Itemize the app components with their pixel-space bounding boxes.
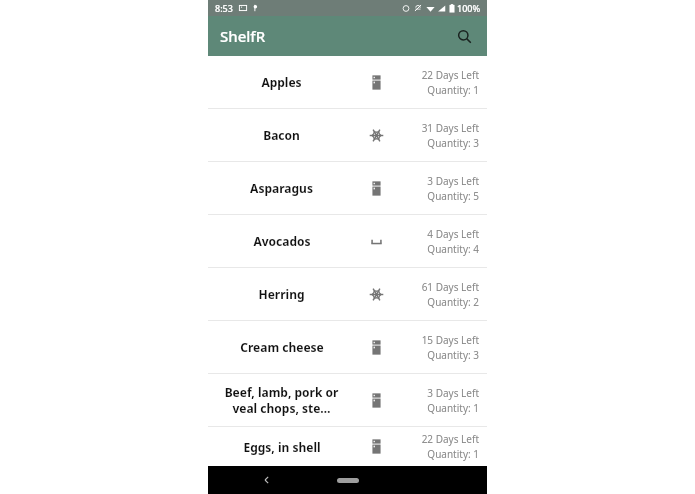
staticText: Quantity: 2 xyxy=(427,295,479,309)
staticText: Cream cheese xyxy=(240,339,324,355)
button[interactable]: Bacon xyxy=(208,109,487,161)
button[interactable]: Home xyxy=(331,472,365,488)
button[interactable]: Beef, lamb, pork or veal chops, ste… xyxy=(208,374,487,426)
staticText: 22 Days Left xyxy=(421,432,479,446)
button[interactable]: Apples xyxy=(208,56,487,108)
staticText: Quantity: 3 xyxy=(427,136,479,150)
staticText: 100% xyxy=(457,2,481,14)
staticText: Quantity: 1 xyxy=(427,447,479,461)
staticText: Bacon xyxy=(263,127,300,143)
staticText: 4 Days Left xyxy=(427,227,479,241)
staticText: Beef, lamb, pork or veal chops, ste… xyxy=(214,384,349,416)
button[interactable]: Herring xyxy=(208,268,487,320)
staticText: Asparagus xyxy=(250,180,313,196)
staticText: Avocados xyxy=(253,233,311,249)
staticText: Quantity: 1 xyxy=(427,83,479,97)
staticText: Apples xyxy=(261,74,302,90)
staticText: Quantity: 3 xyxy=(427,348,479,362)
staticText: ShelfR xyxy=(220,26,266,46)
staticText: Eggs, in shell xyxy=(243,439,321,455)
staticText: 61 Days Left xyxy=(421,280,479,294)
button[interactable]: Asparagus xyxy=(208,162,487,214)
button[interactable]: Eggs, in shell xyxy=(208,427,487,466)
button[interactable]: Cream cheese xyxy=(208,321,487,373)
staticText: 3 Days Left xyxy=(427,174,479,188)
button[interactable]: Avocados xyxy=(208,215,487,267)
staticText: 31 Days Left xyxy=(421,121,479,135)
staticText: 8:53 xyxy=(215,2,233,14)
staticText: Quantity: 1 xyxy=(427,401,479,415)
button[interactable]: Back xyxy=(256,469,278,491)
staticText: 22 Days Left xyxy=(421,68,479,82)
staticText: 15 Days Left xyxy=(421,333,479,347)
staticText: Quantity: 5 xyxy=(427,189,479,203)
button[interactable]: Search xyxy=(449,21,479,51)
staticText: Herring xyxy=(258,286,305,302)
staticText: 3 Days Left xyxy=(427,386,479,400)
staticText: Quantity: 4 xyxy=(427,242,479,256)
